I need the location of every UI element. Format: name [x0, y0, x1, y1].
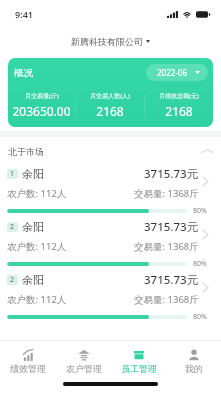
button[interactable]: 我的 — [166, 341, 221, 381]
staticText: 北于市场 — [8, 146, 44, 157]
button[interactable]: 农户管理 — [56, 341, 111, 381]
staticText: 80% — [193, 259, 207, 269]
staticText: 概况 — [14, 67, 33, 79]
staticText: 月交易量(斤) — [25, 92, 59, 100]
staticText: 80% — [193, 206, 207, 216]
button[interactable]: 2 — [0, 269, 221, 322]
staticText: 农户数: 112人 — [7, 240, 67, 253]
staticText: 我的 — [185, 363, 203, 374]
staticText: 余阳 — [22, 167, 44, 181]
button[interactable]: 2022-06 — [146, 64, 208, 81]
staticText: 203650.00 — [12, 103, 71, 119]
staticText: 2168 — [165, 103, 193, 119]
staticText: 2022-06 — [157, 67, 188, 78]
staticText: 绩效管理 — [10, 363, 46, 374]
staticText: 余阳 — [22, 220, 44, 234]
staticText: 农户数: 112人 — [7, 187, 67, 200]
staticText: 9:41 — [15, 8, 33, 20]
staticText: 农户数: 112人 — [7, 293, 67, 306]
staticText: 月绩效总额(元) — [159, 92, 199, 100]
staticText: 交易量: 1368斤 — [134, 187, 199, 200]
staticText: 2168 — [96, 103, 124, 119]
staticText: 3715.73元 — [144, 219, 199, 235]
staticText: 交易量: 1368斤 — [134, 293, 199, 306]
button[interactable]: 员工管理 — [111, 341, 166, 381]
staticText: 2 — [10, 222, 15, 232]
staticText: 3715.73元 — [144, 166, 199, 182]
staticText: 80% — [193, 312, 207, 322]
staticText: 新腾科技有限公司 — [71, 36, 143, 47]
button[interactable]: 绩效管理 — [0, 341, 56, 381]
button[interactable]: 2 — [0, 216, 221, 269]
button[interactable]: 北于市场 — [0, 137, 221, 163]
staticText: 月交易人数(人) — [90, 92, 130, 100]
staticText: 员工管理 — [121, 363, 157, 374]
staticText: 余阳 — [22, 273, 44, 287]
staticText: 1 — [10, 169, 15, 179]
staticText: 3715.73元 — [144, 272, 199, 288]
staticText: 2 — [10, 275, 15, 285]
button[interactable]: 新腾科技有限公司 — [61, 29, 160, 50]
staticText: 农户管理 — [66, 363, 102, 374]
button[interactable]: 1 — [0, 163, 221, 216]
staticText: 交易量: 1368斤 — [134, 240, 199, 253]
